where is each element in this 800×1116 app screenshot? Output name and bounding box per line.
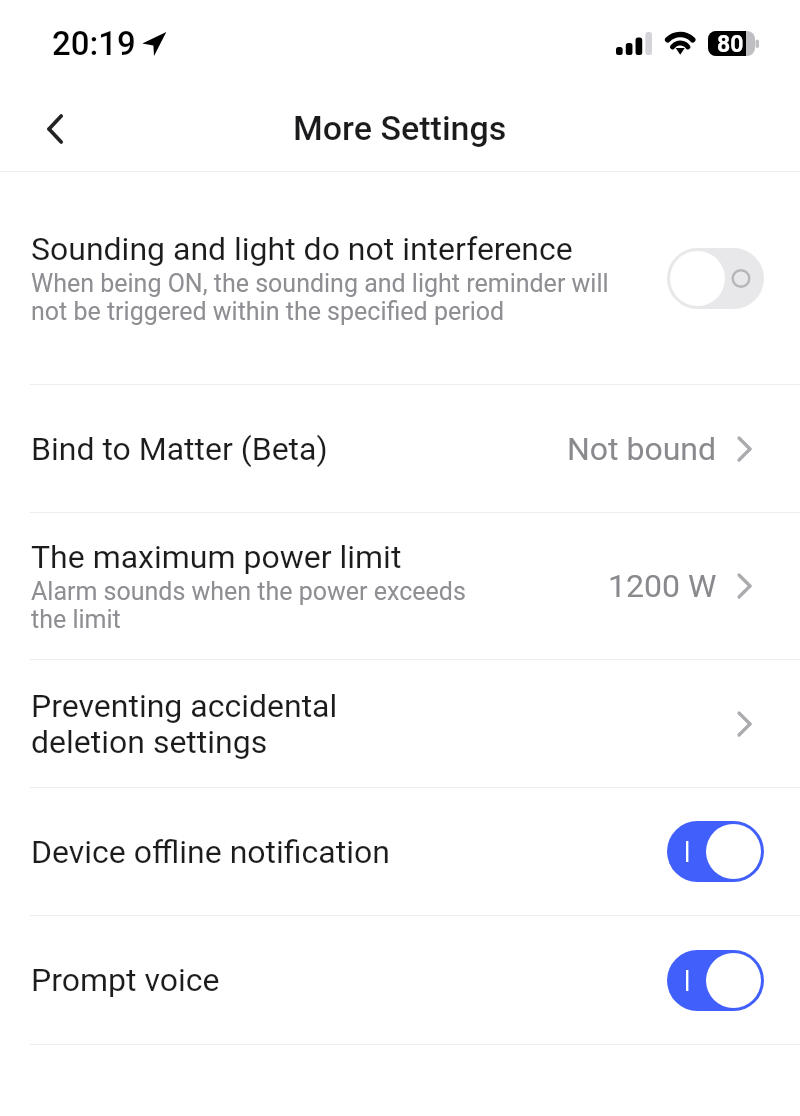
staticText: Preventing accidental deletion settings: [31, 687, 338, 760]
button[interactable]: Device offline notification: [0, 788, 800, 915]
button[interactable]: The maximum power limit: [0, 513, 800, 659]
button[interactable]: Sounding and light do not interference: [0, 172, 800, 384]
staticText: 1200 W: [608, 567, 717, 605]
staticText: The maximum power limit: [31, 538, 402, 576]
button[interactable]: Prompt voice: [0, 916, 800, 1044]
staticText: Prompt voice: [31, 961, 220, 999]
other: Preventing accidental deletion settings: [739, 713, 750, 735]
staticText: Alarm sounds when the power exceeds the …: [31, 577, 466, 634]
staticText: Bind to Matter (Beta): [31, 430, 328, 468]
staticText: Sounding and light do not interference: [31, 230, 573, 268]
button[interactable]: Sounding and light do not interference, …: [667, 248, 764, 309]
staticText: When being ON, the sounding and light re…: [31, 269, 609, 326]
staticText: Not bound: [567, 430, 717, 468]
button[interactable]: Back: [22, 102, 74, 154]
staticText: 80: [717, 31, 744, 55]
staticText: Device offline notification: [31, 833, 390, 871]
button[interactable]: Preventing accidental deletion settings: [0, 660, 800, 787]
button[interactable]: Prompt voice, on: [667, 950, 764, 1011]
button[interactable]: Device offline notification, on: [667, 821, 764, 882]
button[interactable]: Bind to Matter (Beta): [0, 385, 800, 512]
staticText: More Settings: [293, 108, 507, 148]
staticText: 20:19: [52, 24, 136, 63]
